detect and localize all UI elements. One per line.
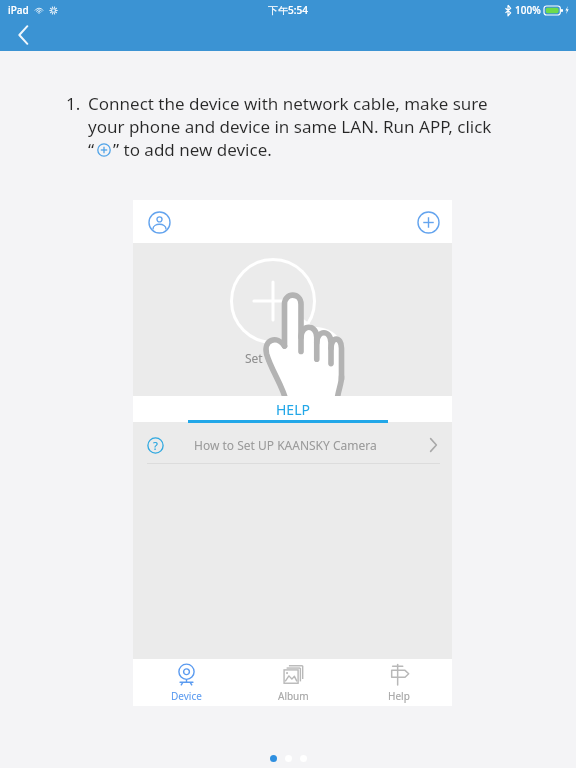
staticText: Connect the device with network cable, m… xyxy=(88,92,488,115)
button[interactable]: Add device xyxy=(412,206,444,238)
button[interactable] xyxy=(285,755,292,762)
staticText: ? xyxy=(153,438,158,453)
button[interactable] xyxy=(300,755,307,762)
staticText: 1. xyxy=(66,92,81,115)
button[interactable]: Device xyxy=(133,659,240,706)
staticText: Help xyxy=(388,689,410,703)
staticText: Album xyxy=(278,689,309,703)
staticText: Device xyxy=(171,689,202,703)
staticText: HELP xyxy=(276,400,310,419)
button[interactable] xyxy=(270,755,277,762)
button[interactable]: Set up device xyxy=(230,258,316,344)
staticText: your phone and device in same LAN. Run A… xyxy=(88,115,492,138)
staticText: How to Set UP KAANSKY Camera xyxy=(194,437,377,453)
staticText: ” to add new device. xyxy=(113,138,272,161)
staticText: Set up xyxy=(245,350,281,366)
button[interactable]: Album xyxy=(240,659,346,706)
staticText: 100% xyxy=(515,3,541,17)
button[interactable]: HELP xyxy=(133,396,452,422)
button[interactable]: Account xyxy=(143,206,175,238)
staticText: “ xyxy=(88,138,95,161)
button[interactable]: Help xyxy=(346,659,452,706)
button[interactable]: ? xyxy=(133,426,452,464)
staticText: 下午5:54 xyxy=(268,3,308,17)
button[interactable]: Back xyxy=(6,19,40,51)
staticText: iPad xyxy=(8,3,29,17)
